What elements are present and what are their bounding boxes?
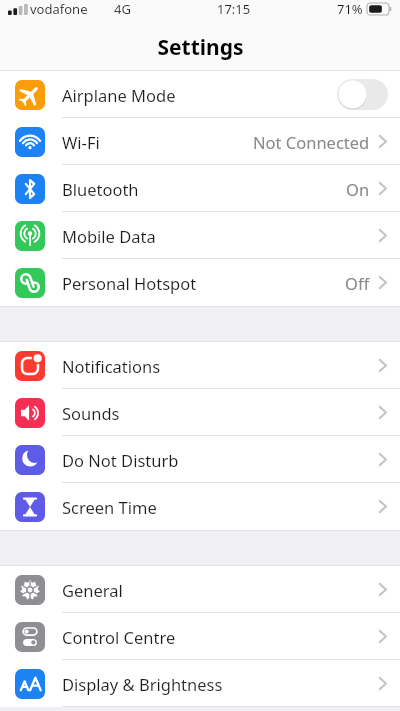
button[interactable]: Control Centre	[0, 613, 400, 660]
staticText: Airplane Mode	[62, 84, 176, 106]
staticText: Mobile Data	[62, 225, 156, 247]
staticText: 71%	[337, 0, 363, 18]
button[interactable]: Mobile Data	[0, 212, 400, 259]
staticText: Display & Brightness	[62, 673, 223, 695]
button[interactable]: Do Not Disturb	[0, 436, 400, 483]
button[interactable]: Wi-Fi	[0, 118, 400, 165]
staticText: Wi-Fi	[62, 131, 100, 153]
staticText: Do Not Disturb	[62, 449, 179, 471]
staticText: General	[62, 579, 123, 601]
button[interactable]: Bluetooth	[0, 165, 400, 212]
staticText: Bluetooth	[62, 178, 139, 200]
button[interactable]: Airplane Mode toggle	[337, 79, 388, 110]
staticText: Notifications	[62, 355, 161, 377]
staticText: vodafone	[30, 0, 88, 18]
staticText: Off	[345, 272, 370, 294]
staticText: Control Centre	[62, 626, 176, 648]
button[interactable]: Screen Time	[0, 483, 400, 530]
staticText: On	[346, 178, 370, 200]
button[interactable]: General	[0, 566, 400, 613]
staticText: Sounds	[62, 402, 120, 424]
staticText: Settings	[157, 33, 244, 62]
staticText: 4G	[114, 0, 131, 18]
button[interactable]: Airplane Mode	[0, 71, 400, 118]
staticText: Screen Time	[62, 496, 157, 518]
staticText: 17:15	[217, 0, 251, 18]
staticText: Not Connected	[253, 131, 370, 153]
button[interactable]: Notifications	[0, 342, 400, 389]
button[interactable]: Sounds	[0, 389, 400, 436]
button[interactable]: Personal Hotspot	[0, 259, 400, 306]
staticText: Personal Hotspot	[62, 272, 197, 294]
button[interactable]: Display & Brightness	[0, 660, 400, 707]
